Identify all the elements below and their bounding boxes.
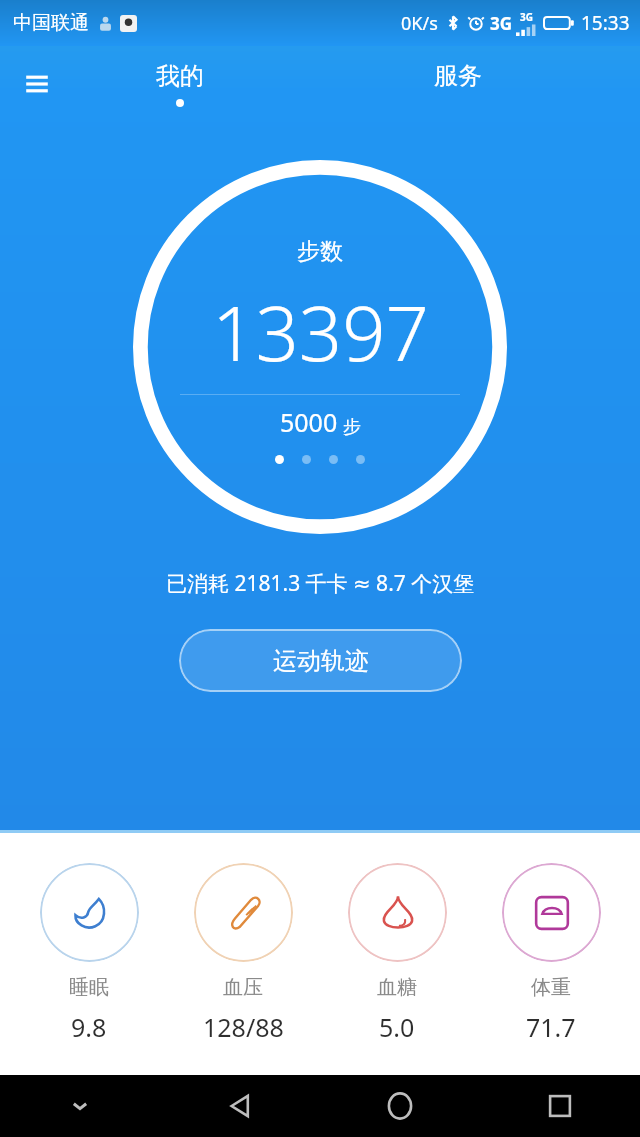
button[interactable]: 我的 [140,57,220,111]
staticText: 5000 [280,405,338,439]
staticText: 睡眠 [69,975,109,1000]
staticText: 服务 [434,61,482,91]
button[interactable]: Menu [14,61,60,107]
button[interactable]: Back [160,1075,320,1137]
button[interactable]: Steps [131,158,509,536]
staticText: 血糖 [377,975,417,1000]
staticText: 体重 [531,975,571,1000]
staticText: 3G [490,12,513,35]
staticText: 步数 [297,237,343,266]
staticText: 128/88 [203,1010,284,1044]
button[interactable]: Home [320,1075,480,1137]
button[interactable]: 血压 [178,863,308,1044]
button[interactable]: Recents [480,1075,640,1137]
staticText: 71.7 [526,1010,576,1044]
staticText: 血压 [223,975,263,1000]
button[interactable]: 服务 [418,57,498,95]
staticText: 0K/s [401,11,438,36]
button[interactable]: 体重 [486,863,616,1044]
staticText: 中国联通 [13,11,89,35]
button[interactable]: 运动轨迹 [179,629,462,692]
staticText: 15:33 [581,10,630,36]
button[interactable]: Hide [0,1075,160,1137]
button[interactable]: 血糖 [332,863,462,1044]
staticText: 运动轨迹 [273,646,369,676]
staticText: 我的 [156,61,204,91]
staticText: 步 [343,416,361,439]
staticText: 3G [520,10,533,24]
staticText: 9.8 [71,1010,107,1044]
staticText: 13397 [212,280,429,384]
staticText: 5.0 [379,1010,415,1044]
staticText: 已消耗 2181.3 千卡 ≈ 8.7 个汉堡 [166,569,475,598]
button[interactable]: 睡眠 [24,863,154,1044]
